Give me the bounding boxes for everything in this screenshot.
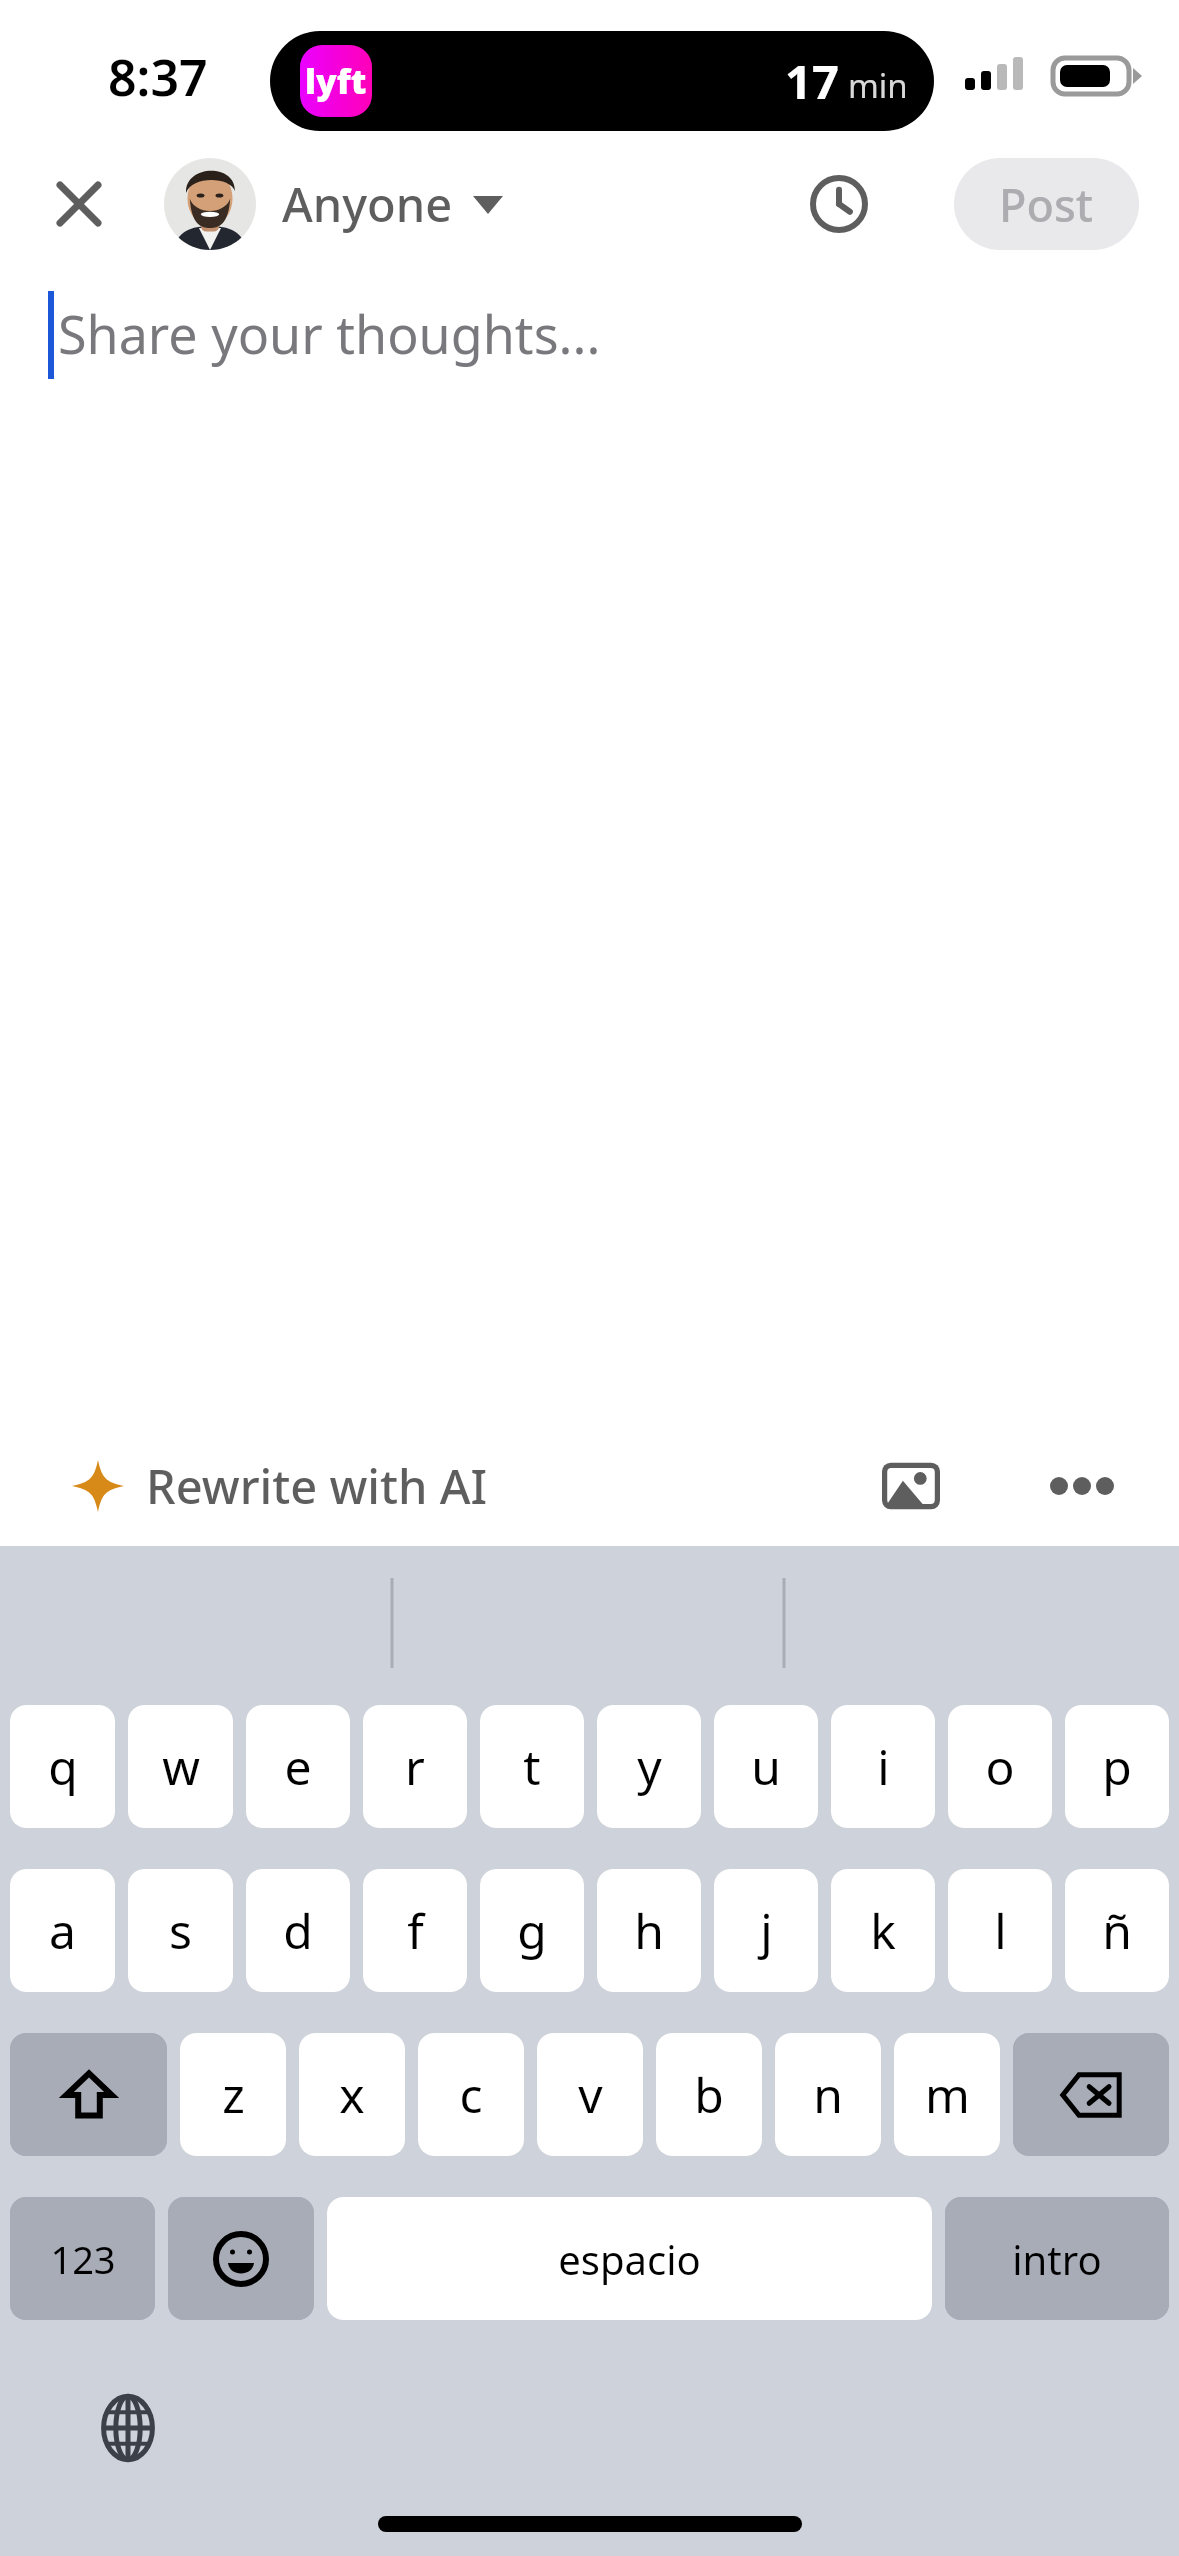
button[interactable]: f	[363, 1869, 467, 1992]
staticText: h	[634, 1898, 664, 1963]
button[interactable]: u	[714, 1705, 818, 1828]
staticText: d	[283, 1898, 313, 1963]
button[interactable]: r	[363, 1705, 467, 1828]
staticText: p	[1102, 1734, 1132, 1799]
button[interactable]: espacio	[327, 2197, 932, 2320]
staticText: c	[459, 2062, 483, 2127]
button[interactable]: i	[831, 1705, 935, 1828]
button[interactable]: Backspace	[1013, 2033, 1169, 2156]
staticText: g	[517, 1898, 547, 1963]
staticText: l	[994, 1898, 1007, 1963]
staticText: o	[985, 1734, 1015, 1799]
staticText: ñ	[1102, 1898, 1132, 1963]
button[interactable]: a	[10, 1869, 115, 1992]
button[interactable]: Post	[954, 158, 1139, 250]
button[interactable]: h	[597, 1869, 701, 1992]
staticText: 17	[785, 49, 839, 113]
staticText: v	[578, 2062, 603, 2127]
staticText: x	[339, 2062, 365, 2127]
button[interactable]: k	[831, 1869, 935, 1992]
staticText: j	[760, 1898, 773, 1963]
staticText: 123	[50, 2233, 116, 2285]
staticText: m	[925, 2062, 970, 2127]
staticText: min	[848, 63, 908, 108]
button[interactable]: x	[299, 2033, 405, 2156]
staticText: b	[694, 2062, 724, 2127]
button[interactable]: z	[180, 2033, 286, 2156]
staticText: a	[49, 1898, 76, 1963]
button[interactable]: Add photo	[868, 1443, 954, 1529]
button[interactable]: t	[480, 1705, 584, 1828]
button[interactable]: More options	[1037, 1441, 1127, 1531]
button[interactable]: intro	[945, 2197, 1169, 2320]
button[interactable]: j	[714, 1869, 818, 1992]
button[interactable]: y	[597, 1705, 701, 1828]
button[interactable]: c	[418, 2033, 524, 2156]
staticText: e	[284, 1734, 312, 1799]
staticText: z	[222, 2062, 245, 2127]
staticText: espacio	[558, 2232, 701, 2286]
button[interactable]: m	[894, 2033, 1000, 2156]
button[interactable]: e	[246, 1705, 350, 1828]
staticText: i	[877, 1734, 890, 1799]
staticText: Share your thoughts...	[58, 298, 601, 369]
button[interactable]: ñ	[1065, 1869, 1169, 1992]
button[interactable]: d	[246, 1869, 350, 1992]
button[interactable]: p	[1065, 1705, 1169, 1828]
staticText: Rewrite with AI	[146, 1454, 488, 1518]
button[interactable]: b	[656, 2033, 762, 2156]
button[interactable]: Share your thoughts...	[0, 260, 1179, 410]
button[interactable]: Change language	[86, 2386, 170, 2470]
button[interactable]: n	[775, 2033, 881, 2156]
staticText: Anyone	[282, 172, 453, 236]
button[interactable]: w	[128, 1705, 233, 1828]
staticText: f	[407, 1898, 424, 1963]
button[interactable]: Close	[40, 165, 118, 243]
button[interactable]: Anyone	[158, 152, 509, 256]
button[interactable]: o	[948, 1705, 1052, 1828]
button[interactable]: Schedule post	[799, 164, 879, 244]
staticText: intro	[1012, 2232, 1102, 2286]
staticText: t	[523, 1734, 541, 1799]
button[interactable]: Shift	[10, 2033, 167, 2156]
button[interactable]: Rewrite with AI	[62, 1446, 498, 1526]
staticText: y	[637, 1734, 662, 1799]
button[interactable]: s	[128, 1869, 233, 1992]
button[interactable]: q	[10, 1705, 115, 1828]
staticText: u	[751, 1734, 781, 1799]
staticText: n	[813, 2062, 843, 2127]
button[interactable]: l	[948, 1869, 1052, 1992]
staticText: k	[870, 1898, 896, 1963]
button[interactable]: v	[537, 2033, 643, 2156]
staticText: lyft	[305, 58, 367, 104]
staticText: w	[162, 1734, 200, 1799]
button[interactable]: 123	[10, 2197, 155, 2320]
button[interactable]: Emoji	[168, 2197, 314, 2320]
staticText: s	[169, 1898, 192, 1963]
staticText: r	[405, 1734, 425, 1799]
staticText: 8:37	[108, 43, 208, 111]
button[interactable]: g	[480, 1869, 584, 1992]
staticText: q	[48, 1734, 78, 1799]
staticText: Post	[999, 174, 1094, 235]
